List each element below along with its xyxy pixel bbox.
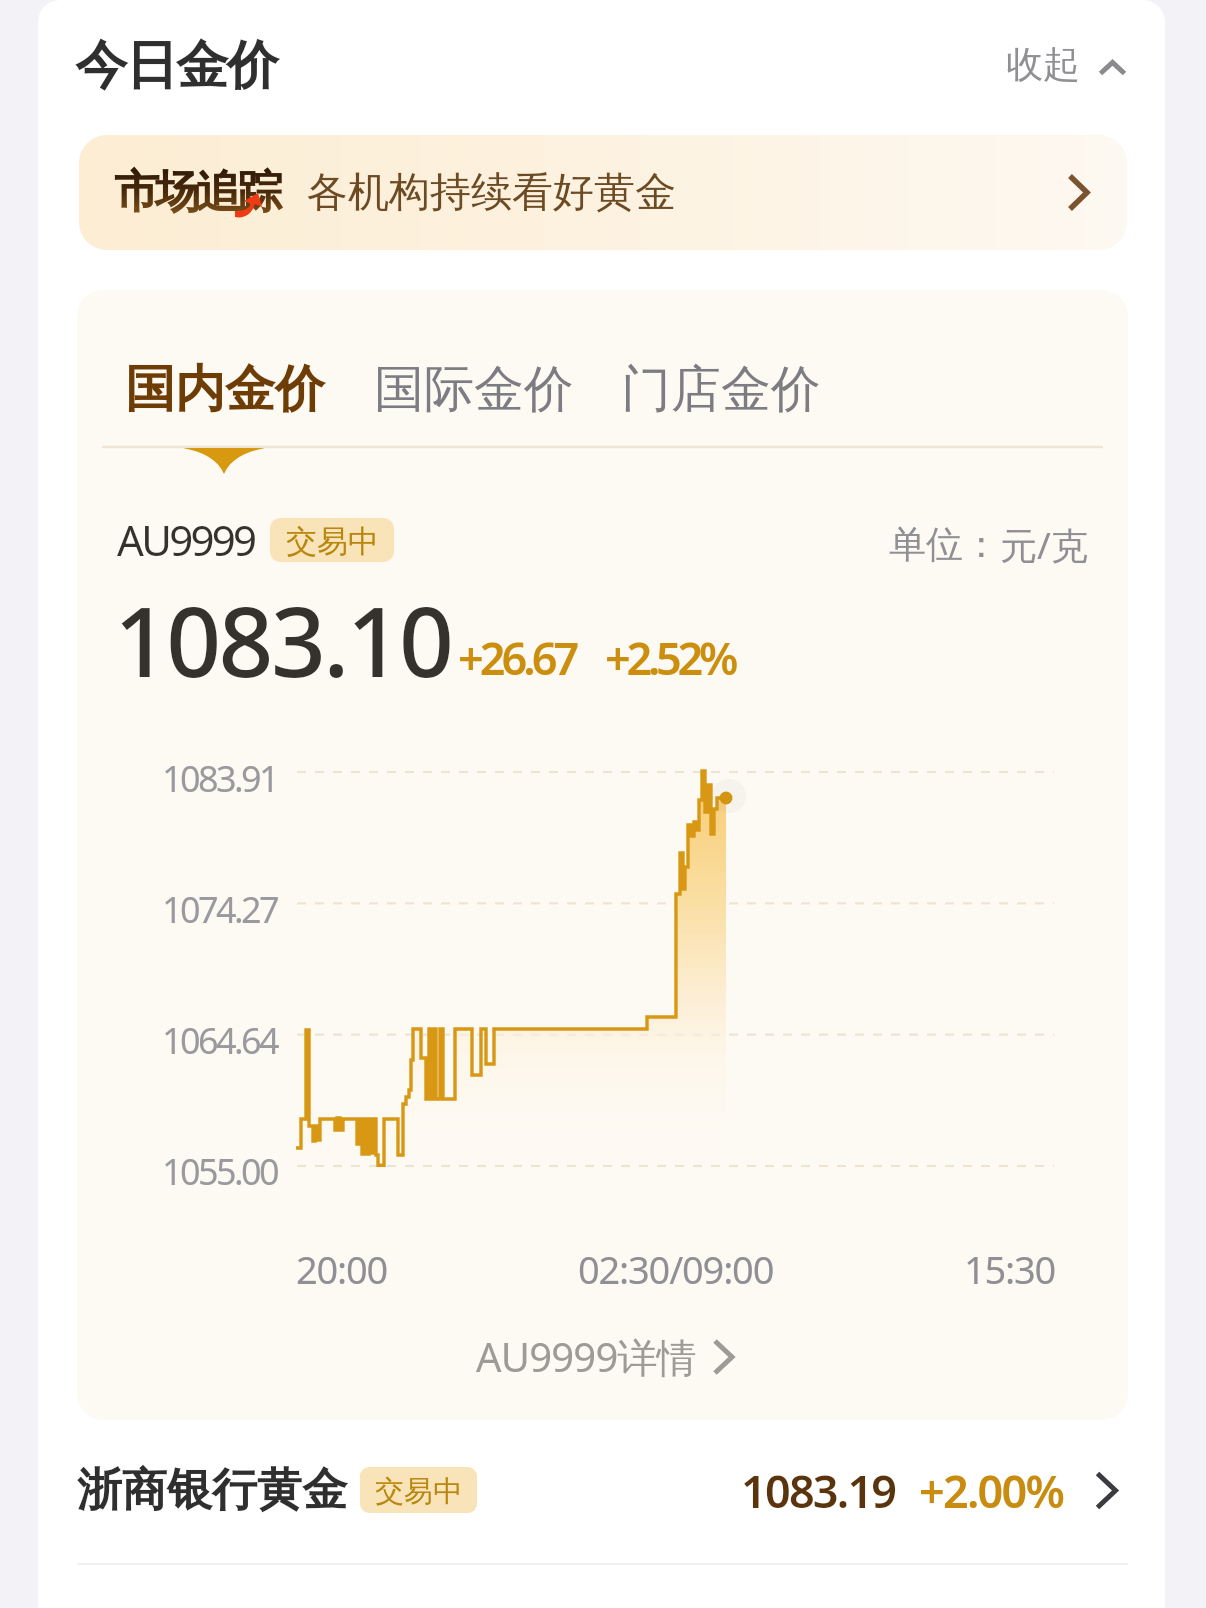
button[interactable]: 门店金价: [609, 346, 833, 433]
staticText: AU9999: [117, 511, 255, 568]
staticText: AU9999详情: [476, 1329, 696, 1384]
staticText: 20:00: [296, 1243, 388, 1295]
staticText: 今日金价: [76, 33, 278, 99]
staticText: 各机构持续看好黄金: [307, 167, 676, 219]
staticText: 国内金价: [125, 358, 325, 421]
staticText: 15:30: [964, 1243, 1056, 1295]
staticText: 1055.00: [162, 1147, 278, 1196]
staticText: 交易中: [375, 1473, 462, 1510]
staticText: 1083.91: [162, 754, 278, 803]
staticText: 单位：: [889, 521, 1000, 568]
button[interactable]: 国内金价: [113, 346, 337, 433]
staticText: 收起: [1006, 41, 1080, 88]
button[interactable]: 收起: [992, 27, 1141, 102]
staticText: 02:30/09:00: [578, 1243, 774, 1295]
staticText: 元/克: [1000, 519, 1088, 570]
staticText: 1083.10: [114, 574, 452, 705]
button[interactable]: 市场追踪: [79, 135, 1127, 250]
staticText: 市场追踪: [116, 164, 280, 221]
staticText: 交易中: [286, 522, 379, 561]
staticText: +26.67: [458, 627, 576, 688]
staticText: +2.00%: [919, 1460, 1063, 1521]
staticText: 1064.64: [162, 1016, 278, 1065]
staticText: 国际金价: [374, 358, 574, 421]
staticText: +2.52%: [605, 627, 734, 688]
button[interactable]: 浙商银行黄金: [38, 1434, 1165, 1546]
staticText: 浙商银行黄金: [77, 1462, 347, 1519]
button[interactable]: 国际金价: [362, 346, 586, 433]
staticText: 1083.19: [741, 1460, 896, 1521]
button[interactable]: AU9999详情: [468, 1321, 741, 1392]
staticText: 1074.27: [162, 885, 278, 934]
staticText: 门店金价: [621, 358, 821, 421]
